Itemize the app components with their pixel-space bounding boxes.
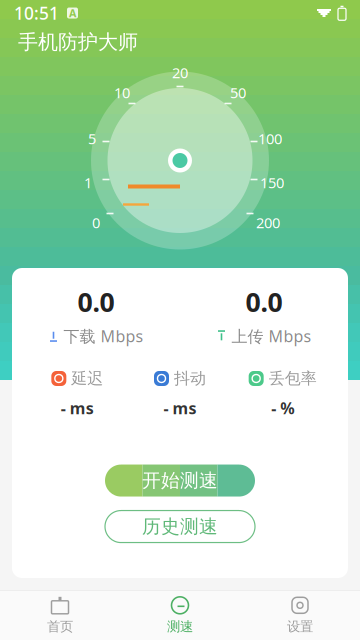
staticText: 丢包率 (269, 369, 317, 388)
staticText: 抖动 (174, 369, 206, 388)
staticText: - ms (61, 397, 94, 418)
staticText: - ms (163, 397, 196, 418)
staticText: 手机防护大师 (18, 30, 138, 54)
staticText: 上传 Mbps (231, 325, 311, 347)
button[interactable]: 开始测速 (105, 465, 255, 497)
staticText: 150 (260, 173, 284, 192)
staticText: 0.0 (245, 284, 282, 319)
staticText: 200 (256, 213, 280, 232)
staticText: 测速 (167, 618, 193, 635)
staticText: 50 (230, 83, 246, 102)
staticText: 5 (88, 129, 96, 148)
staticText: 10:51 (14, 1, 59, 24)
button[interactable]: 设置 (240, 591, 360, 640)
staticText: 0 (92, 213, 100, 232)
staticText: 1 (84, 173, 92, 192)
staticText: - % (271, 397, 294, 418)
staticText: 10 (114, 83, 130, 102)
staticText: 首页 (47, 618, 73, 635)
button[interactable]: 历史测速 (105, 511, 255, 543)
button[interactable]: 测速 (120, 591, 240, 640)
staticText: 历史测速 (142, 515, 218, 538)
staticText: 开始测速 (142, 469, 218, 492)
staticText: 100 (258, 129, 282, 148)
staticText: 延迟 (71, 369, 103, 388)
staticText: 下载 Mbps (63, 325, 143, 347)
staticText: 20 (172, 63, 188, 82)
staticText: 0.0 (77, 284, 114, 319)
button[interactable]: 首页 (0, 591, 120, 640)
staticText: A (69, 6, 76, 20)
staticText: 设置 (287, 618, 313, 635)
